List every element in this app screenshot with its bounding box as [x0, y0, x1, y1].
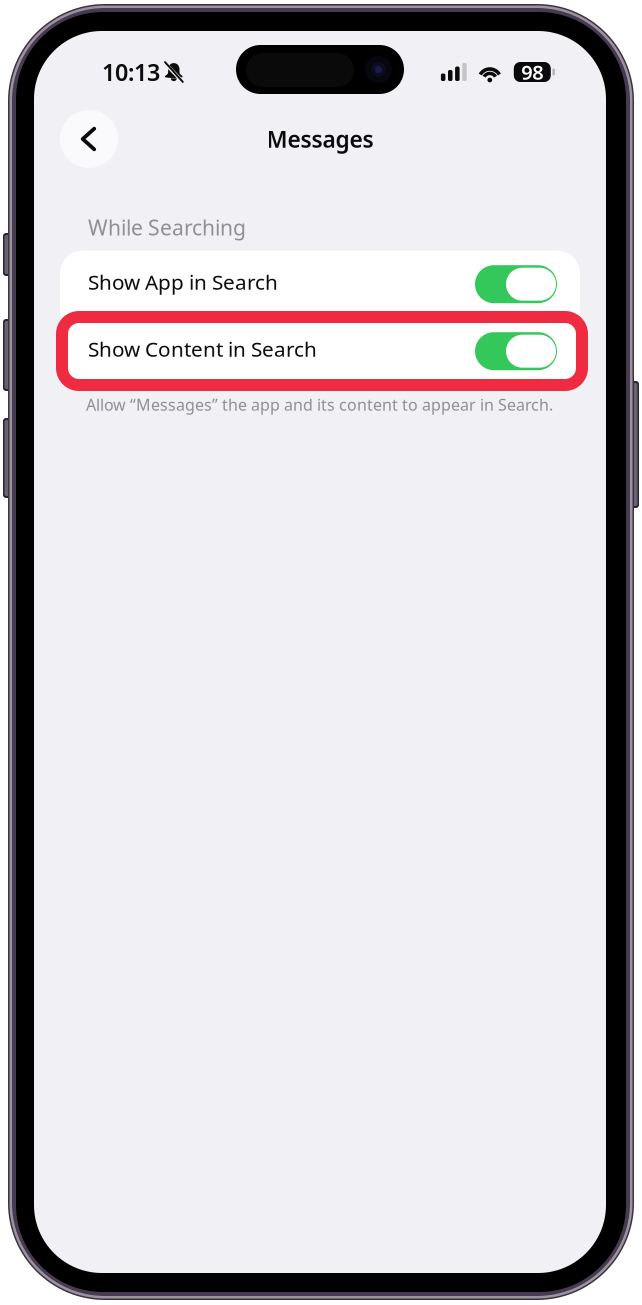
button[interactable]: Show Content in Search	[60, 318, 580, 385]
staticText: Messages	[266, 124, 373, 154]
staticText: Allow “Messages” the app and its content…	[86, 394, 553, 415]
staticText: Show App in Search	[88, 268, 278, 296]
button[interactable]: Back	[60, 110, 118, 168]
staticText: 98	[521, 58, 543, 86]
staticText: Show Content in Search	[88, 335, 317, 363]
staticText: While Searching	[88, 213, 246, 242]
staticText: 10:13	[102, 56, 160, 88]
button[interactable]: Show App in Search	[60, 251, 580, 318]
